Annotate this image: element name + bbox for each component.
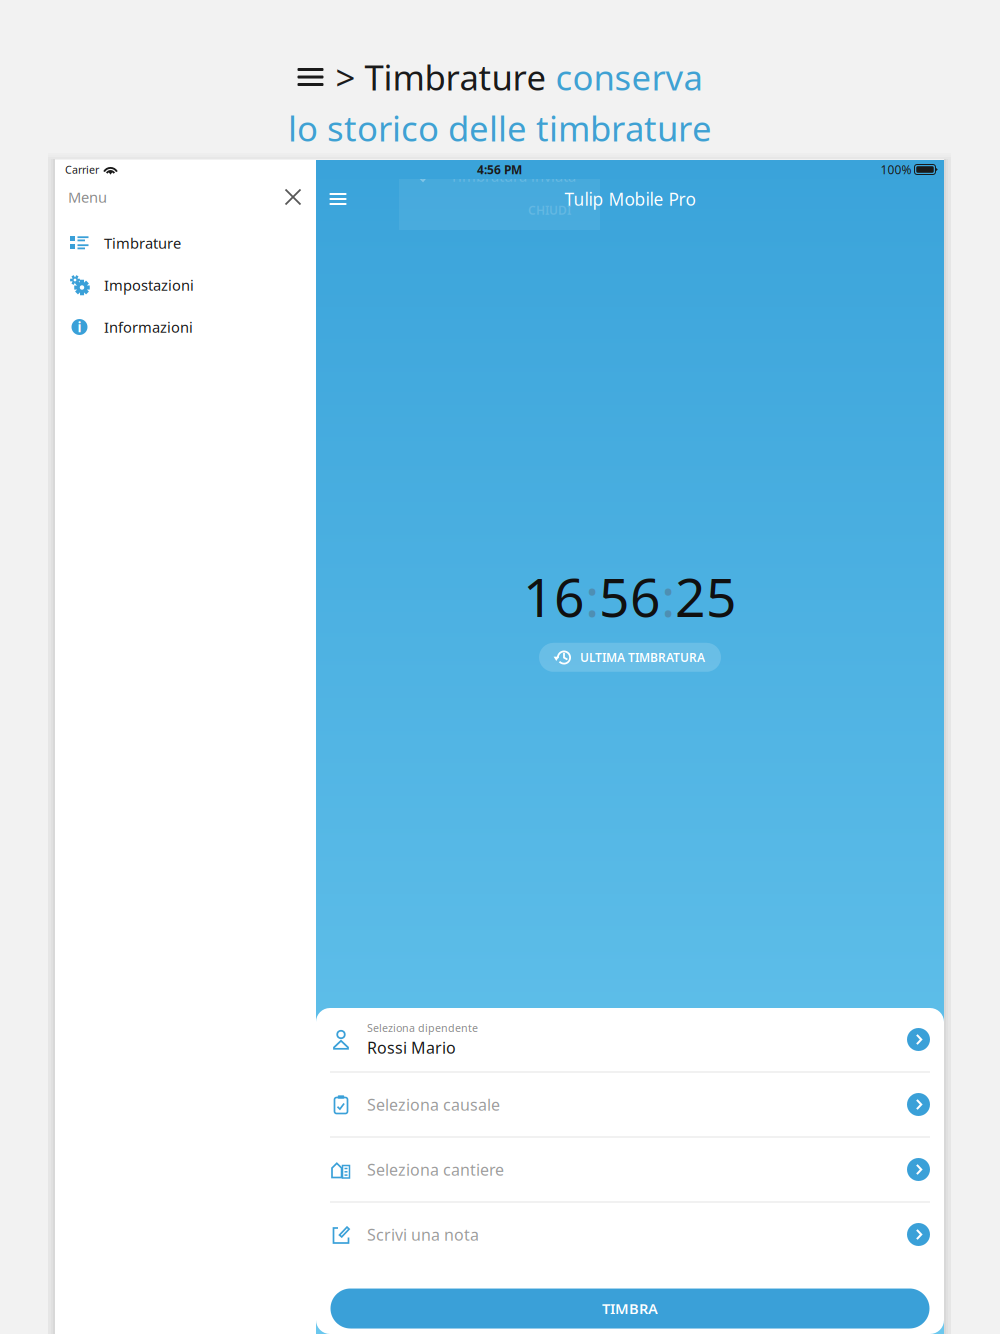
staticText: Timbrature bbox=[104, 233, 181, 253]
button[interactable]: Seleziona causale bbox=[316, 1072, 944, 1136]
button[interactable]: Timbrature bbox=[55, 222, 316, 264]
staticText: CHIUDI bbox=[528, 202, 571, 218]
button[interactable]: Menu bbox=[316, 179, 360, 219]
button[interactable]: Seleziona dipendente bbox=[316, 1007, 944, 1071]
staticText: Impostazioni bbox=[104, 275, 194, 295]
staticText: 56 bbox=[599, 561, 661, 632]
staticText: conserva bbox=[555, 54, 702, 100]
staticText: Seleziona dipendente bbox=[367, 1021, 478, 1035]
button[interactable]: TIMBRA bbox=[330, 1288, 929, 1328]
staticText: > Timbrature bbox=[335, 54, 555, 100]
button[interactable]: i bbox=[55, 306, 316, 348]
staticText: Seleziona causale bbox=[367, 1094, 500, 1115]
staticText: Timbratura inviata bbox=[450, 166, 576, 186]
staticText: 25 bbox=[675, 561, 737, 632]
staticText: : bbox=[661, 561, 675, 632]
staticText: : bbox=[585, 561, 599, 632]
staticText: 4:56 PM bbox=[477, 161, 522, 177]
staticText: TIMBRA bbox=[602, 1299, 658, 1318]
button[interactable]: ULTIMA TIMBRATURA bbox=[539, 643, 721, 672]
staticText: Informazioni bbox=[104, 317, 193, 337]
staticText: Tulip Mobile Pro bbox=[564, 187, 695, 210]
staticText: 100% bbox=[880, 161, 911, 177]
staticText: i bbox=[77, 318, 81, 336]
staticText: ULTIMA TIMBRATURA bbox=[580, 649, 705, 665]
staticText: Scrivi una nota bbox=[367, 1224, 479, 1245]
button[interactable]: Chiudi menu bbox=[278, 182, 308, 212]
staticText: Menu bbox=[68, 187, 107, 207]
staticText: Seleziona cantiere bbox=[367, 1159, 504, 1180]
button[interactable]: Scrivi una nota bbox=[316, 1202, 944, 1266]
button[interactable]: Seleziona cantiere bbox=[316, 1137, 944, 1201]
staticText: Rossi Mario bbox=[367, 1037, 456, 1058]
staticText: 16 bbox=[523, 561, 585, 632]
staticText: lo storico delle timbrature bbox=[288, 105, 712, 151]
button[interactable]: Impostazioni bbox=[55, 264, 316, 306]
staticText: Carrier bbox=[65, 162, 99, 177]
